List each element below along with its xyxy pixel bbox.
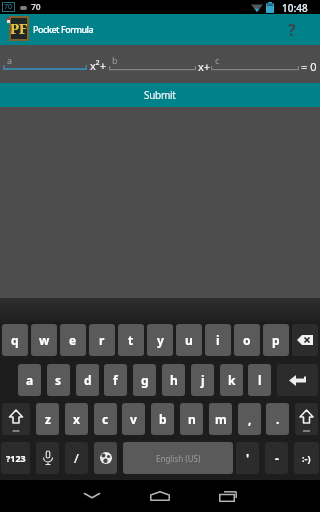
button[interactable]: f bbox=[104, 364, 127, 396]
button[interactable] bbox=[292, 324, 318, 356]
button[interactable]: - bbox=[265, 442, 288, 474]
button[interactable] bbox=[204, 480, 252, 512]
staticText: o bbox=[243, 332, 251, 348]
button[interactable] bbox=[36, 442, 59, 474]
button[interactable]: g bbox=[133, 364, 156, 396]
staticText: c bbox=[215, 54, 220, 66]
staticText: k bbox=[228, 372, 236, 388]
button[interactable]: p bbox=[263, 324, 289, 356]
staticText: h bbox=[170, 372, 178, 388]
button[interactable]: , bbox=[238, 403, 261, 435]
staticText: 70 bbox=[31, 1, 41, 13]
staticText: PF bbox=[10, 19, 28, 38]
staticText: x bbox=[73, 411, 80, 427]
button[interactable] bbox=[295, 403, 318, 435]
button[interactable]: :-) bbox=[294, 442, 319, 474]
staticText: x²+ bbox=[90, 58, 106, 73]
button[interactable]: Submit bbox=[0, 83, 320, 107]
button[interactable]: v bbox=[122, 403, 145, 435]
button[interactable]: i bbox=[205, 324, 231, 356]
staticText: / bbox=[74, 449, 79, 467]
button[interactable]: ? bbox=[272, 14, 312, 45]
staticText: n bbox=[188, 411, 196, 427]
staticText: . bbox=[276, 411, 280, 427]
staticText: y bbox=[157, 332, 164, 348]
staticText: v bbox=[130, 411, 137, 427]
button[interactable]: q bbox=[2, 324, 28, 356]
button[interactable] bbox=[136, 480, 184, 512]
button[interactable]: e bbox=[60, 324, 86, 356]
staticText: d bbox=[84, 372, 92, 388]
button[interactable]: m bbox=[209, 403, 232, 435]
button[interactable] bbox=[277, 364, 318, 396]
button[interactable] bbox=[68, 480, 116, 512]
staticText: , bbox=[248, 411, 252, 427]
staticText: 70 bbox=[4, 2, 13, 12]
staticText: f bbox=[113, 372, 118, 388]
staticText: j bbox=[201, 372, 205, 388]
staticText: a bbox=[26, 372, 34, 388]
staticText: e bbox=[69, 332, 77, 348]
staticText: b bbox=[159, 411, 167, 427]
button[interactable] bbox=[2, 403, 30, 435]
staticText: Pocket Formula bbox=[33, 23, 94, 35]
button[interactable]: r bbox=[89, 324, 115, 356]
staticText: r bbox=[99, 332, 105, 348]
staticText: s bbox=[55, 372, 62, 388]
button[interactable]: h bbox=[162, 364, 185, 396]
staticText: b bbox=[112, 54, 118, 66]
button[interactable]: o bbox=[234, 324, 260, 356]
button[interactable]: u bbox=[176, 324, 202, 356]
button[interactable]: z bbox=[36, 403, 59, 435]
button[interactable] bbox=[94, 442, 117, 474]
staticText: t bbox=[128, 332, 134, 348]
button[interactable]: English (US) bbox=[123, 442, 233, 474]
button[interactable]: t bbox=[118, 324, 144, 356]
button[interactable]: l bbox=[248, 364, 271, 396]
button[interactable]: b bbox=[151, 403, 174, 435]
staticText: g bbox=[141, 372, 149, 388]
staticText: ?123 bbox=[6, 452, 26, 464]
staticText: = 0 bbox=[301, 59, 317, 74]
button[interactable]: d bbox=[76, 364, 99, 396]
button[interactable]: s bbox=[47, 364, 70, 396]
staticText: i bbox=[216, 332, 220, 348]
button[interactable]: ' bbox=[236, 442, 259, 474]
staticText: z bbox=[45, 411, 51, 427]
staticText: m bbox=[215, 411, 227, 427]
staticText: ' bbox=[246, 450, 250, 466]
staticText: - bbox=[275, 450, 279, 466]
staticText: c bbox=[102, 411, 109, 427]
button[interactable]: n bbox=[180, 403, 203, 435]
staticText: w bbox=[39, 332, 50, 348]
button[interactable]: k bbox=[220, 364, 243, 396]
button[interactable]: w bbox=[31, 324, 57, 356]
button[interactable]: j bbox=[191, 364, 214, 396]
button[interactable]: a bbox=[18, 364, 41, 396]
staticText: x+ bbox=[198, 59, 211, 74]
staticText: :-) bbox=[302, 452, 311, 464]
staticText: u bbox=[185, 332, 193, 348]
button[interactable]: c bbox=[94, 403, 117, 435]
staticText: English (US) bbox=[156, 453, 201, 464]
button[interactable]: / bbox=[65, 442, 88, 474]
button[interactable]: x bbox=[65, 403, 88, 435]
staticText: 10:48 bbox=[282, 1, 308, 15]
staticText: l bbox=[258, 372, 262, 388]
staticText: ? bbox=[288, 19, 296, 41]
button[interactable]: ?123 bbox=[1, 442, 30, 474]
button[interactable]: y bbox=[147, 324, 173, 356]
button[interactable]: . bbox=[266, 403, 289, 435]
staticText: q bbox=[11, 332, 19, 348]
staticText: a bbox=[7, 54, 13, 66]
staticText: p bbox=[272, 332, 280, 348]
staticText: Submit bbox=[144, 88, 176, 102]
